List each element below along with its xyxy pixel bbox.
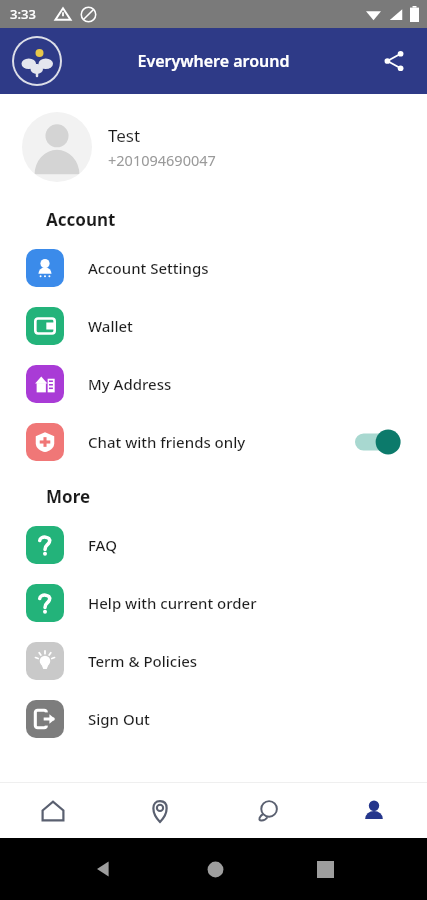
staticText: Wallet — [88, 316, 401, 336]
button[interactable]: Locations — [106, 783, 213, 838]
button[interactable]: Home — [0, 783, 106, 838]
button[interactable]: Wallet — [0, 297, 427, 355]
staticText: Help with current order — [88, 593, 401, 613]
button[interactable]: App logo — [12, 36, 62, 86]
button[interactable]: FAQ — [0, 516, 427, 574]
staticText: Everywhere around — [137, 50, 290, 72]
staticText: FAQ — [88, 535, 401, 555]
button[interactable]: Term & Policies — [0, 632, 427, 690]
button[interactable]: Test — [0, 106, 427, 188]
staticText: Account Settings — [88, 258, 401, 278]
staticText: Term & Policies — [88, 651, 401, 671]
button[interactable]: Chat with friends only toggle — [355, 429, 401, 455]
staticText: Sign Out — [88, 709, 401, 729]
button[interactable]: My Address — [0, 355, 427, 413]
button[interactable]: Chat — [213, 783, 320, 838]
staticText: Test — [108, 124, 141, 147]
button[interactable]: Share — [373, 40, 415, 82]
staticText: Account — [46, 208, 116, 231]
staticText: My Address — [88, 374, 401, 394]
button[interactable]: Profile — [320, 783, 427, 838]
button[interactable]: Help with current order — [0, 574, 427, 632]
button[interactable]: Account Settings — [0, 239, 427, 297]
staticText: Chat with friends only — [88, 432, 355, 452]
staticText: More — [46, 485, 91, 508]
staticText: +201094690047 — [108, 150, 216, 170]
staticText: 3:33 — [10, 5, 36, 23]
button[interactable]: Sign Out — [0, 690, 427, 748]
button[interactable]: Chat with friends only — [0, 413, 427, 471]
